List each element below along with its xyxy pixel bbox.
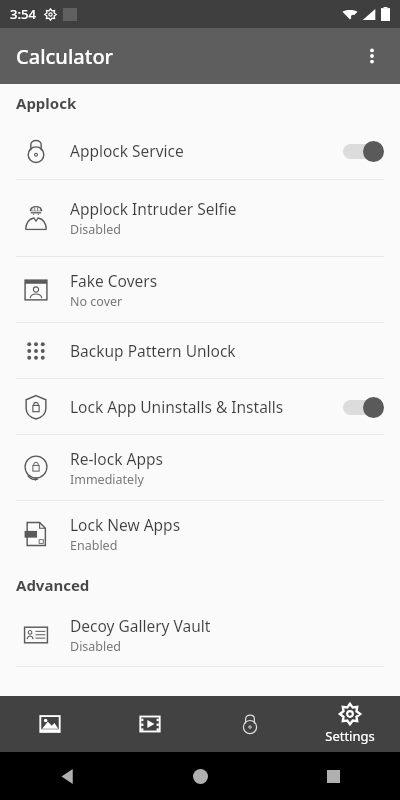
staticText: Applock Service bbox=[70, 140, 184, 161]
staticText: Settings bbox=[325, 727, 375, 745]
staticText: Lock New Apps bbox=[70, 514, 181, 535]
button[interactable]: Applock Service toggle bbox=[338, 136, 384, 166]
button[interactable]: Videos bbox=[100, 696, 200, 752]
button[interactable]: Decoy Gallery Vault bbox=[0, 604, 400, 666]
staticText: Backup Pattern Unlock bbox=[70, 340, 236, 361]
button[interactable]: Lock App Uninstalls & Installs bbox=[0, 379, 400, 434]
staticText: Calculator bbox=[16, 43, 114, 70]
button[interactable]: More options bbox=[348, 32, 396, 80]
button[interactable]: Applock Service bbox=[0, 122, 400, 179]
button[interactable]: Lock New Apps bbox=[0, 501, 400, 566]
staticText: 3:54 bbox=[10, 5, 36, 23]
staticText: Disabled bbox=[70, 221, 122, 238]
button[interactable]: Applock bbox=[200, 696, 300, 752]
staticText: Immediately bbox=[70, 471, 144, 488]
button[interactable]: Applock Intruder Selfie bbox=[0, 180, 400, 256]
staticText: Applock Intruder Selfie bbox=[70, 198, 237, 219]
staticText: No cover bbox=[70, 293, 123, 310]
button[interactable]: Re-lock Apps bbox=[0, 435, 400, 500]
button[interactable]: Backup Pattern Unlock bbox=[0, 323, 400, 378]
staticText: Applock bbox=[16, 93, 77, 113]
button[interactable]: Settings bbox=[300, 696, 400, 752]
button[interactable]: Photos bbox=[0, 696, 100, 752]
staticText: Fake Covers bbox=[70, 270, 158, 291]
staticText: Advanced bbox=[16, 575, 90, 595]
staticText: Disabled bbox=[70, 638, 122, 655]
staticText: Enabled bbox=[70, 537, 118, 554]
button[interactable]: Fake Covers bbox=[0, 257, 400, 322]
staticText: Re-lock Apps bbox=[70, 448, 163, 469]
staticText: Decoy Gallery Vault bbox=[70, 615, 211, 636]
staticText: Lock App Uninstalls & Installs bbox=[70, 396, 284, 417]
button[interactable]: Lock App Uninstalls & Installs toggle bbox=[338, 392, 384, 422]
